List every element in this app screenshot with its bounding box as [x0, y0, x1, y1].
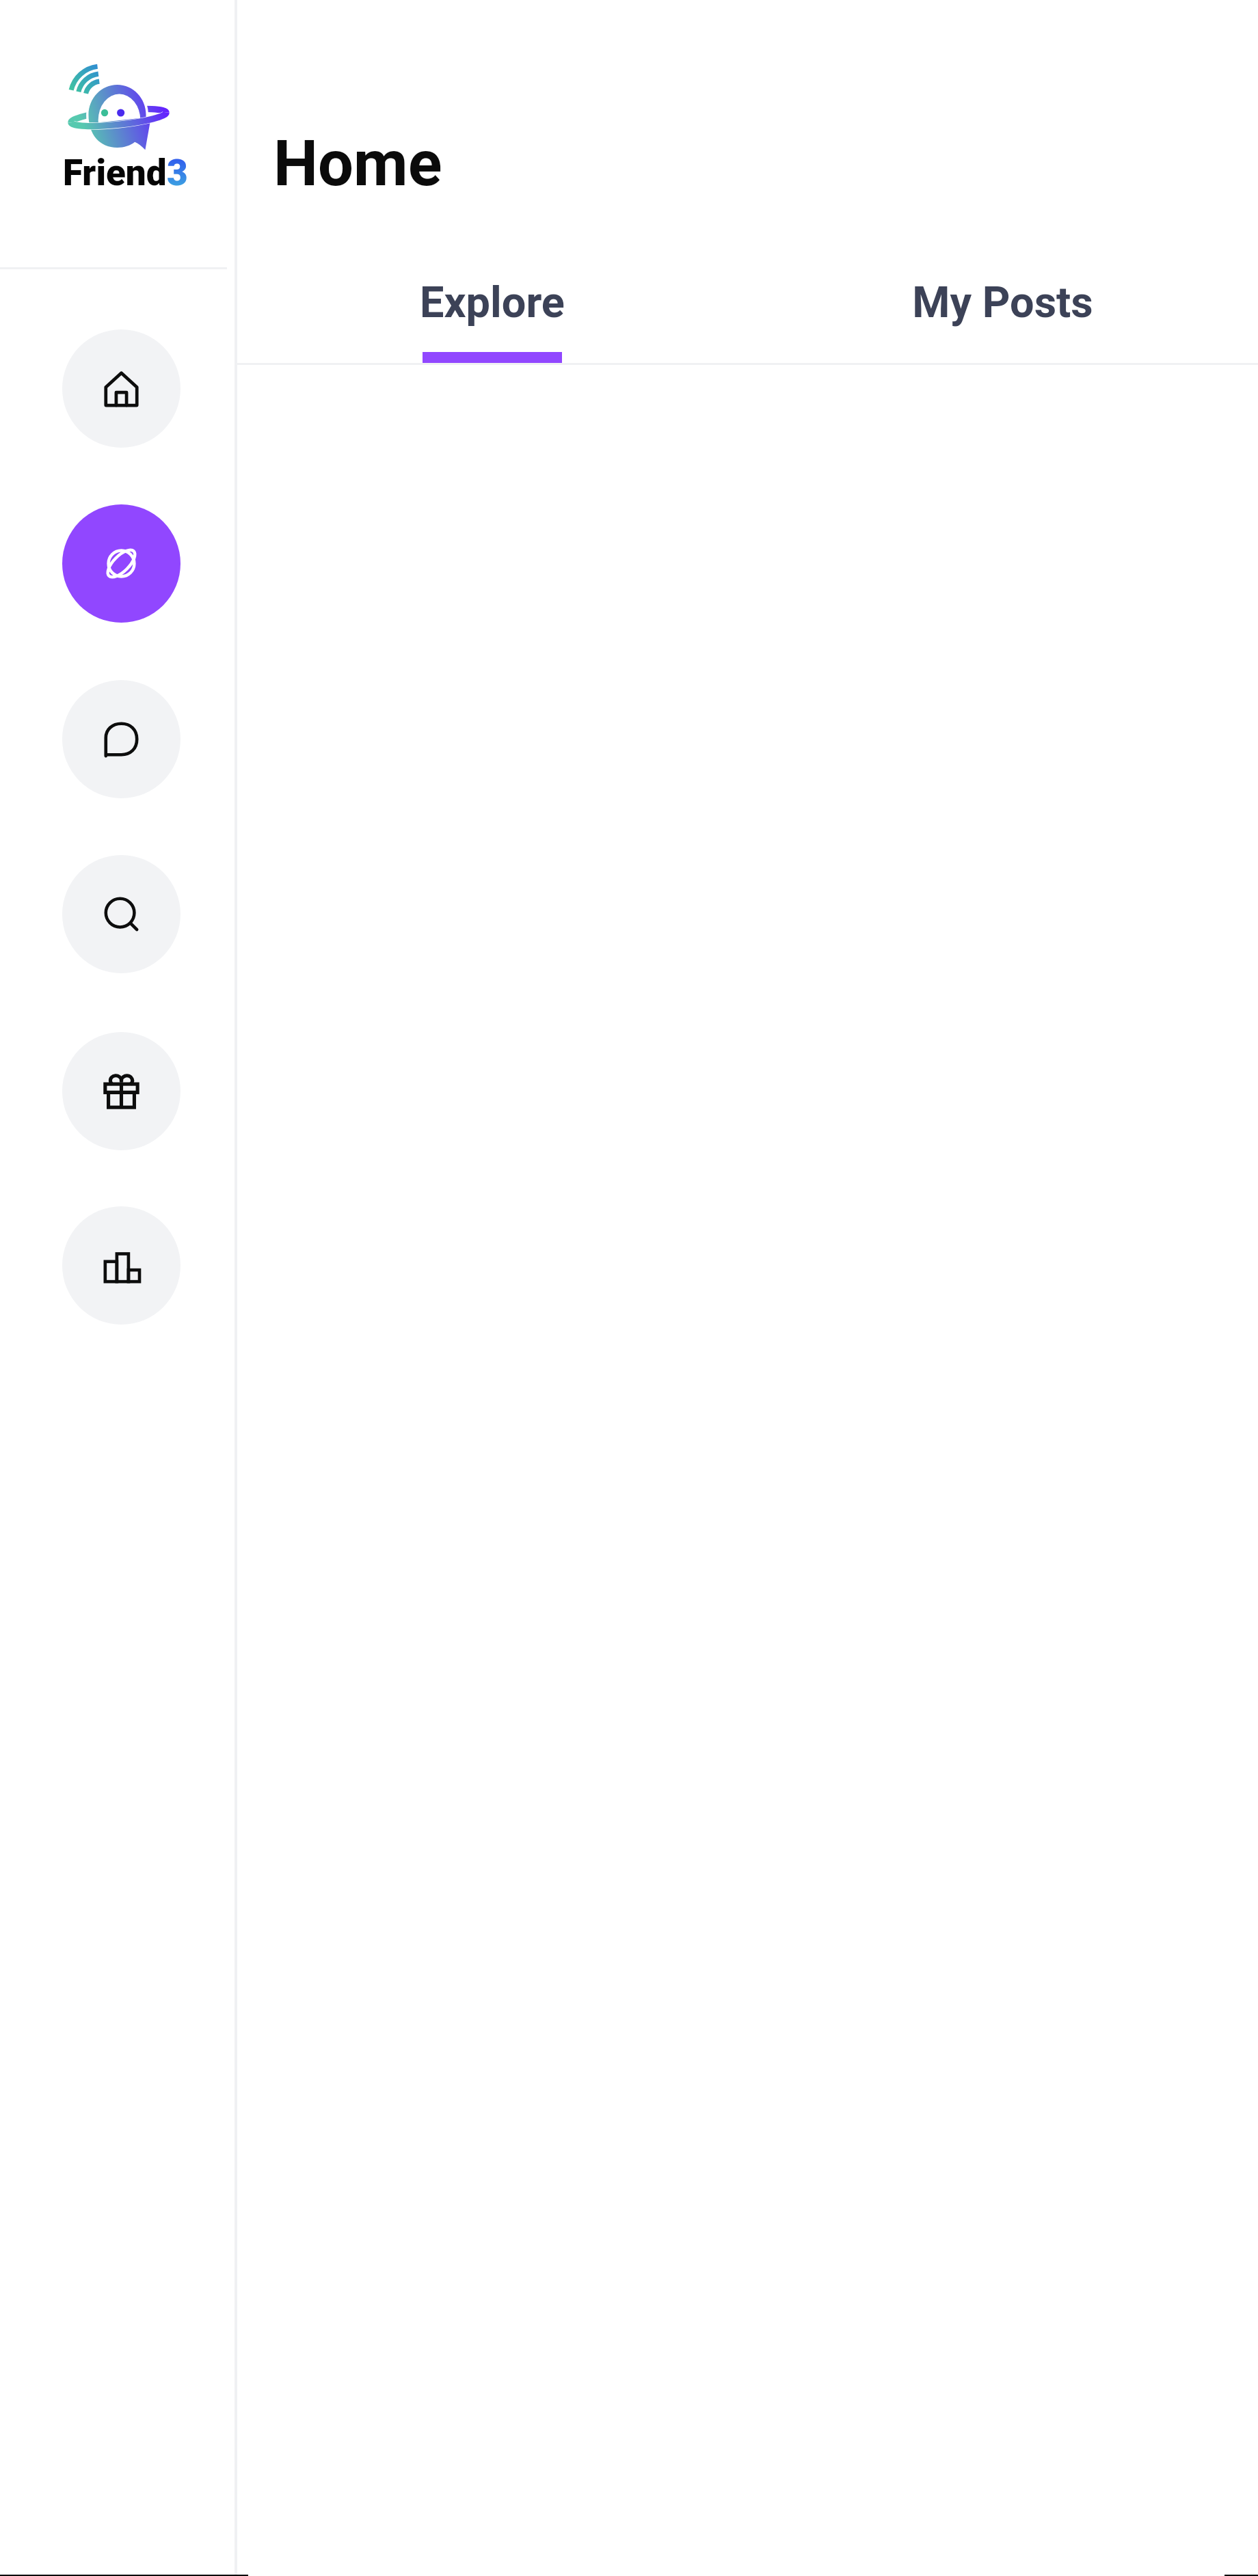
staticText: Friend: [63, 152, 167, 194]
staticText: 3: [167, 152, 188, 194]
button[interactable]: Messages: [62, 680, 180, 798]
staticText: My Posts: [912, 277, 1093, 328]
staticText: Home: [273, 127, 442, 201]
button[interactable]: Leaderboard: [62, 1206, 180, 1325]
staticText: Explore: [420, 277, 565, 328]
button[interactable]: Home: [62, 329, 180, 448]
button[interactable]: My Posts: [747, 267, 1258, 363]
button[interactable]: Search: [62, 855, 180, 973]
button[interactable]: Friend: [8, 0, 235, 267]
button[interactable]: Explore: [62, 504, 180, 623]
button[interactable]: Explore: [237, 267, 747, 363]
button[interactable]: Rewards: [62, 1032, 180, 1150]
